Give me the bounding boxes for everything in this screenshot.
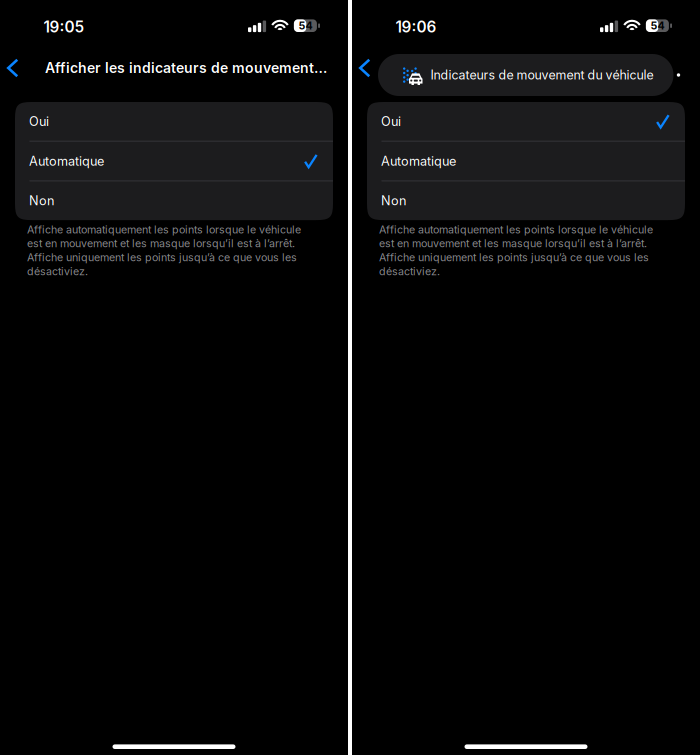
staticText: Affiche automatiquement les points lorsq… bbox=[379, 223, 653, 236]
staticText: est en mouvement et les masque lorsqu’il… bbox=[379, 237, 647, 250]
button[interactable]: Automatique bbox=[367, 142, 685, 180]
button[interactable]: Indicateurs de mouvement du véhicule bbox=[378, 54, 673, 96]
staticText: Afficher les indicateurs de mouvement… bbox=[45, 59, 327, 76]
button[interactable]: Back bbox=[352, 54, 378, 82]
button[interactable]: Automatique bbox=[15, 142, 333, 180]
staticText: Oui bbox=[381, 114, 401, 129]
staticText: Non bbox=[381, 193, 406, 208]
staticText: 54 bbox=[299, 19, 313, 32]
staticText: désactiviez. bbox=[27, 265, 88, 278]
button[interactable]: Back bbox=[0, 47, 26, 89]
staticText: Affiche automatiquement les points lorsq… bbox=[27, 223, 301, 236]
staticText: Affiche uniquement les points jusqu’à ce… bbox=[379, 251, 649, 264]
button[interactable]: Non bbox=[15, 181, 333, 220]
staticText: Automatique bbox=[381, 153, 456, 169]
staticText: Oui bbox=[29, 114, 49, 129]
staticText: 19:05 bbox=[43, 18, 84, 36]
staticText: est en mouvement et les masque lorsqu’il… bbox=[27, 237, 295, 250]
button[interactable]: More bbox=[673, 54, 683, 96]
staticText: Automatique bbox=[29, 153, 104, 169]
staticText: Non bbox=[29, 193, 54, 208]
button[interactable]: Non bbox=[367, 181, 685, 220]
button[interactable]: Oui bbox=[367, 102, 685, 141]
button[interactable]: Oui bbox=[15, 102, 333, 141]
staticText: désactiviez. bbox=[379, 265, 440, 278]
staticText: 54 bbox=[651, 19, 665, 32]
staticText: 19:06 bbox=[395, 18, 436, 36]
staticText: Indicateurs de mouvement du véhicule bbox=[430, 67, 653, 82]
staticText: Affiche uniquement les points jusqu’à ce… bbox=[27, 251, 297, 264]
